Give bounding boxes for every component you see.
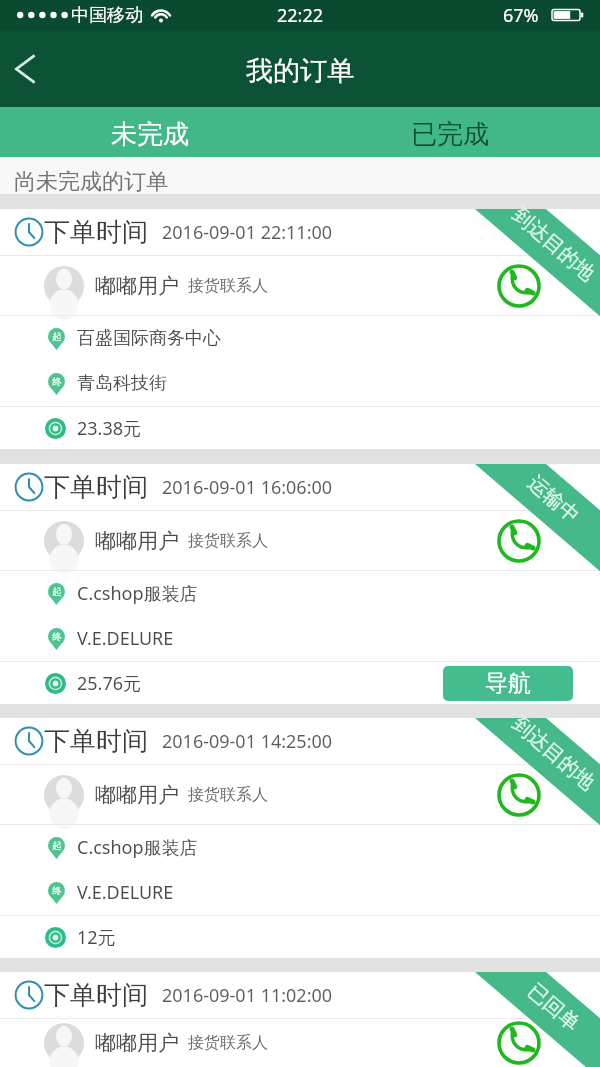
staticText: 嘟嘟用户 xyxy=(95,528,179,554)
staticText: 已完成 xyxy=(411,118,489,151)
staticText: 起 xyxy=(52,331,62,343)
staticText: 中国移动 xyxy=(71,4,143,27)
staticText: 我的订单 xyxy=(246,54,354,88)
staticText: V.E.DELURE xyxy=(77,626,174,651)
staticText: 接货联系人 xyxy=(188,531,268,551)
button[interactable]: Back xyxy=(0,38,58,100)
staticText: 2016-09-01 11:02:00 xyxy=(162,983,333,1008)
staticText: V.E.DELURE xyxy=(77,880,174,905)
staticText: 下单时间 xyxy=(44,216,148,249)
staticText: 青岛科技街 xyxy=(77,372,167,395)
staticText: 导航 xyxy=(485,669,531,698)
staticText: 到达目的地 xyxy=(508,202,600,286)
staticText: 23.38元 xyxy=(77,416,142,441)
staticText: 嘟嘟用户 xyxy=(95,782,179,808)
staticText: 接货联系人 xyxy=(188,1033,268,1053)
button[interactable]: 下单时间 xyxy=(0,464,600,704)
staticText: 嘟嘟用户 xyxy=(95,273,179,299)
staticText: 12元 xyxy=(77,925,116,950)
staticText: C.cshop服装店 xyxy=(77,835,198,860)
staticText: 百盛国际商务中心 xyxy=(77,327,221,350)
staticText: 运输中 xyxy=(523,470,585,528)
button[interactable]: 下单时间 xyxy=(0,209,600,449)
staticText: 到达目的地 xyxy=(508,711,600,795)
button[interactable]: 下单时间 xyxy=(0,718,600,958)
button[interactable]: 已完成 xyxy=(300,107,600,157)
staticText: 67% xyxy=(503,3,539,28)
button[interactable]: 导航 xyxy=(443,666,573,701)
staticText: 终 xyxy=(52,885,62,897)
button[interactable]: Call xyxy=(493,1019,545,1067)
staticText: 接货联系人 xyxy=(188,276,268,296)
button[interactable]: 下单时间 xyxy=(0,972,600,1067)
staticText: 起 xyxy=(52,586,62,598)
staticText: 接货联系人 xyxy=(188,785,268,805)
button[interactable]: 未完成 xyxy=(0,107,300,157)
button[interactable]: Call xyxy=(493,769,545,821)
staticText: 下单时间 xyxy=(44,471,148,504)
staticText: C.cshop服装店 xyxy=(77,581,198,606)
staticText: 尚未完成的订单 xyxy=(14,168,168,196)
staticText: 下单时间 xyxy=(44,979,148,1012)
button[interactable]: Call xyxy=(493,515,545,567)
staticText: 22:22 xyxy=(277,3,324,28)
staticText: 未完成 xyxy=(111,118,189,151)
staticText: 25.76元 xyxy=(77,671,142,696)
button[interactable]: Call xyxy=(493,260,545,312)
staticText: 2016-09-01 22:11:00 xyxy=(162,220,333,245)
staticText: 终 xyxy=(52,376,62,388)
staticText: 嘟嘟用户 xyxy=(95,1030,179,1056)
staticText: 起 xyxy=(52,840,62,852)
staticText: 终 xyxy=(52,631,62,643)
staticText: 2016-09-01 16:06:00 xyxy=(162,475,333,500)
staticText: 已回单 xyxy=(523,978,585,1036)
staticText: 2016-09-01 14:25:00 xyxy=(162,729,333,754)
staticText: 下单时间 xyxy=(44,725,148,758)
